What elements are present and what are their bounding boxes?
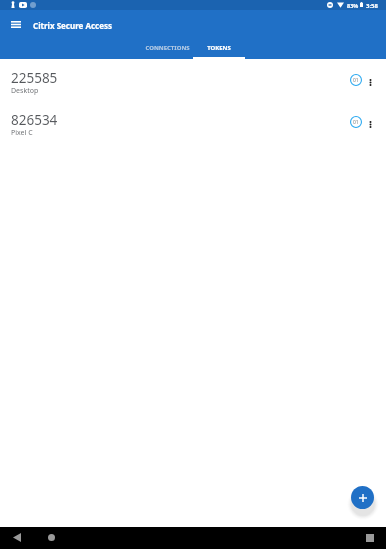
button[interactable]: 826534 [0,101,386,142]
staticText: CONNECTIONS [145,44,190,52]
staticText: 225585 [11,69,58,87]
button[interactable]: Navigation menu [6,14,26,34]
button[interactable]: Home [45,531,58,544]
staticText: 83% [347,2,359,9]
staticText: 3:58 [366,2,378,10]
button[interactable]: TOKENS [193,38,245,59]
staticText: Citrix Secure Access [33,20,113,31]
staticText: Pixel C [11,128,33,138]
staticText: Desktop [11,86,39,96]
button[interactable]: Recent apps [363,531,376,544]
button[interactable]: More options [365,77,376,88]
staticText: TOKENS [207,44,231,52]
button[interactable]: More options [365,119,376,130]
button[interactable]: 225585 [0,59,386,100]
button[interactable]: Back [10,531,23,544]
button[interactable]: Add token [351,486,374,509]
staticText: 01 [353,119,359,126]
button[interactable]: CONNECTIONS [141,38,193,59]
staticText: 01 [353,77,359,84]
staticText: 826534 [11,111,58,129]
